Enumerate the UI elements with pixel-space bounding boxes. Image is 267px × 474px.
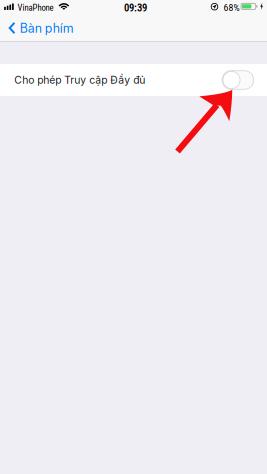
button[interactable]: Bàn phím xyxy=(0,14,84,42)
staticText: Cho phép Truy cập Đầy đủ xyxy=(14,74,145,86)
staticText: Bàn phím xyxy=(20,21,74,36)
staticText: 09:39 xyxy=(124,2,147,14)
button[interactable]: Cho phép Truy cập Đầy đủ xyxy=(0,64,267,96)
staticText: 68% xyxy=(224,2,240,13)
staticText: VinaPhone xyxy=(17,3,53,13)
